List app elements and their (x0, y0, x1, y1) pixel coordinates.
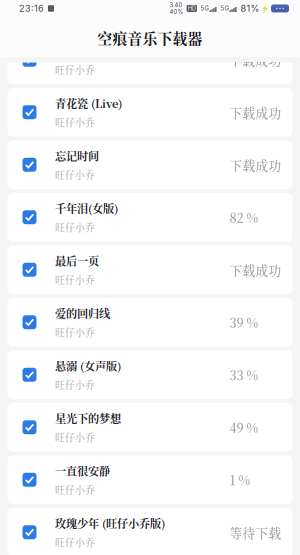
staticText: 旺仔小乔 (55, 483, 95, 497)
staticText: 5G (200, 5, 208, 12)
staticText: 旺仔小乔 (55, 63, 95, 77)
button[interactable]: 光年之外 (7, 35, 292, 84)
button[interactable]: 爱的回归线 (7, 298, 292, 346)
staticText: 5G (220, 5, 228, 12)
button[interactable]: 最后一页 (7, 245, 292, 294)
staticText: 81% (240, 3, 259, 14)
staticText: 千年泪(女版) (55, 200, 118, 216)
staticText: 旺仔小乔 (55, 220, 95, 234)
staticText: 空痕音乐下载器 (97, 27, 202, 49)
staticText: 玫瑰少年 (旺仔小乔版) (55, 515, 165, 531)
staticText: 等待下载 (229, 523, 281, 541)
staticText: 旺仔小乔 (55, 325, 95, 339)
staticText: 星光下的梦想 (55, 410, 121, 426)
staticText: 爱的回归线 (55, 305, 110, 321)
staticText: 23:16 (19, 3, 44, 14)
staticText: 39 % (229, 313, 258, 331)
button[interactable]: 星光下的梦想 (7, 403, 292, 451)
staticText: 49 % (229, 418, 258, 436)
staticText: 旺仔小乔 (55, 378, 95, 392)
staticText: 40% (170, 8, 184, 15)
staticText: 下载成功 (229, 261, 281, 279)
staticText: 旺仔小乔 (55, 430, 95, 444)
button[interactable]: 玫瑰少年 (旺仔小乔版) (7, 508, 292, 555)
staticText: 下载成功 (229, 51, 281, 69)
staticText: 3.40 (170, 2, 183, 9)
button[interactable]: 忘记时间 (7, 140, 292, 189)
button[interactable]: 青花瓷 (Live) (7, 88, 292, 136)
button[interactable]: 空痕音乐下载器 (0, 18, 300, 59)
button[interactable]: 悬溺 (女声版) (7, 350, 292, 399)
staticText: 下载成功 (229, 156, 281, 174)
staticText: HD (188, 5, 196, 12)
staticText: 1 % (229, 471, 250, 489)
staticText: 悬溺 (女声版) (55, 358, 121, 374)
staticText: 旺仔小乔 (55, 273, 95, 287)
staticText: 旺仔小乔 (55, 535, 95, 549)
button[interactable]: 一直很安静 (7, 455, 292, 504)
staticText: 旺仔小乔 (55, 168, 95, 182)
staticText: 青花瓷 (Live) (55, 95, 122, 111)
staticText: 忘记时间 (55, 148, 99, 164)
staticText: 下载成功 (229, 103, 281, 121)
button[interactable]: 千年泪(女版) (7, 193, 292, 241)
staticText: 光年之外 (55, 43, 99, 59)
staticText: 一直很安静 (55, 463, 110, 479)
staticText: 旺仔小乔 (55, 115, 95, 129)
staticText: 最后一页 (55, 253, 99, 269)
staticText: 33 % (229, 366, 258, 384)
staticText: 82 % (229, 208, 258, 226)
